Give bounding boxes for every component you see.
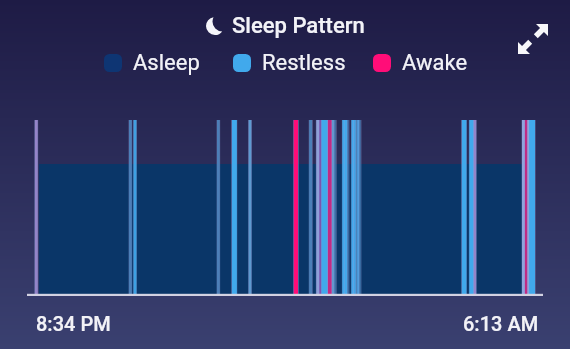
button[interactable]: Restless <box>233 50 346 76</box>
staticText: 6:13 AM <box>463 312 539 335</box>
staticText: Restless <box>262 50 346 76</box>
staticText: 8:34 PM <box>36 312 111 335</box>
button[interactable]: Asleep <box>104 50 200 76</box>
staticText: Sleep Pattern <box>232 13 365 39</box>
button[interactable]: Sleep Pattern <box>206 13 365 39</box>
button[interactable]: Awake <box>373 50 468 76</box>
staticText: Asleep <box>133 50 200 76</box>
staticText: Awake <box>402 50 468 76</box>
button[interactable]: Expand chart <box>517 23 548 54</box>
